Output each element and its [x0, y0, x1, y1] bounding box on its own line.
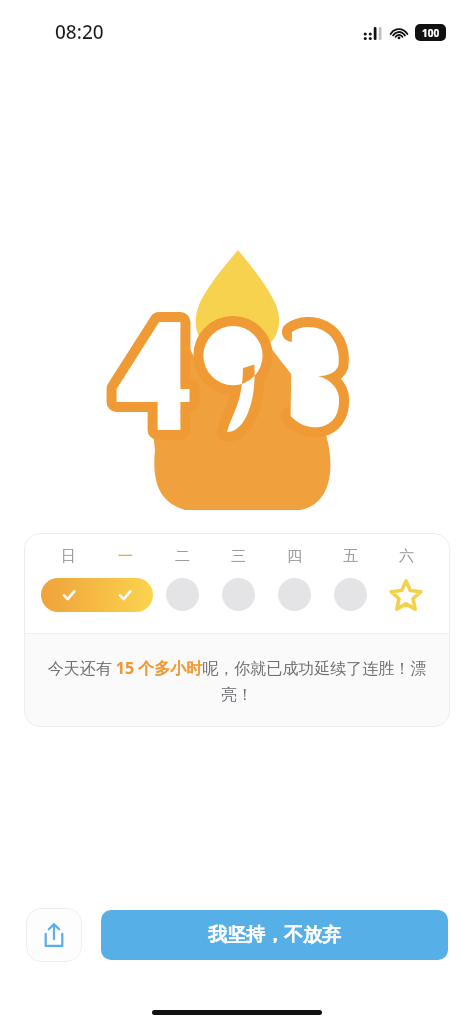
staticText: 日	[61, 547, 76, 566]
button[interactable]	[278, 578, 311, 611]
staticText: 三	[231, 547, 246, 566]
staticText: 一	[118, 547, 133, 566]
staticText: 我坚持，不放弃	[208, 923, 341, 947]
button[interactable]: 我坚持，不放弃	[101, 910, 448, 960]
staticText: 08:20	[55, 19, 104, 45]
button[interactable]	[334, 578, 367, 611]
staticText: 五	[343, 547, 358, 566]
staticText: 六	[399, 547, 414, 566]
staticText: 今天还有 15 个多小时呢，你就已成功延续了连胜！漂亮！	[42, 657, 432, 705]
staticText: 100	[422, 26, 440, 40]
staticText: 二	[175, 547, 190, 566]
staticText: 四	[287, 547, 302, 566]
button[interactable]	[388, 578, 424, 614]
button[interactable]	[166, 578, 199, 611]
button[interactable]	[41, 578, 153, 612]
button[interactable]	[222, 578, 255, 611]
button[interactable]: Share	[26, 908, 82, 962]
